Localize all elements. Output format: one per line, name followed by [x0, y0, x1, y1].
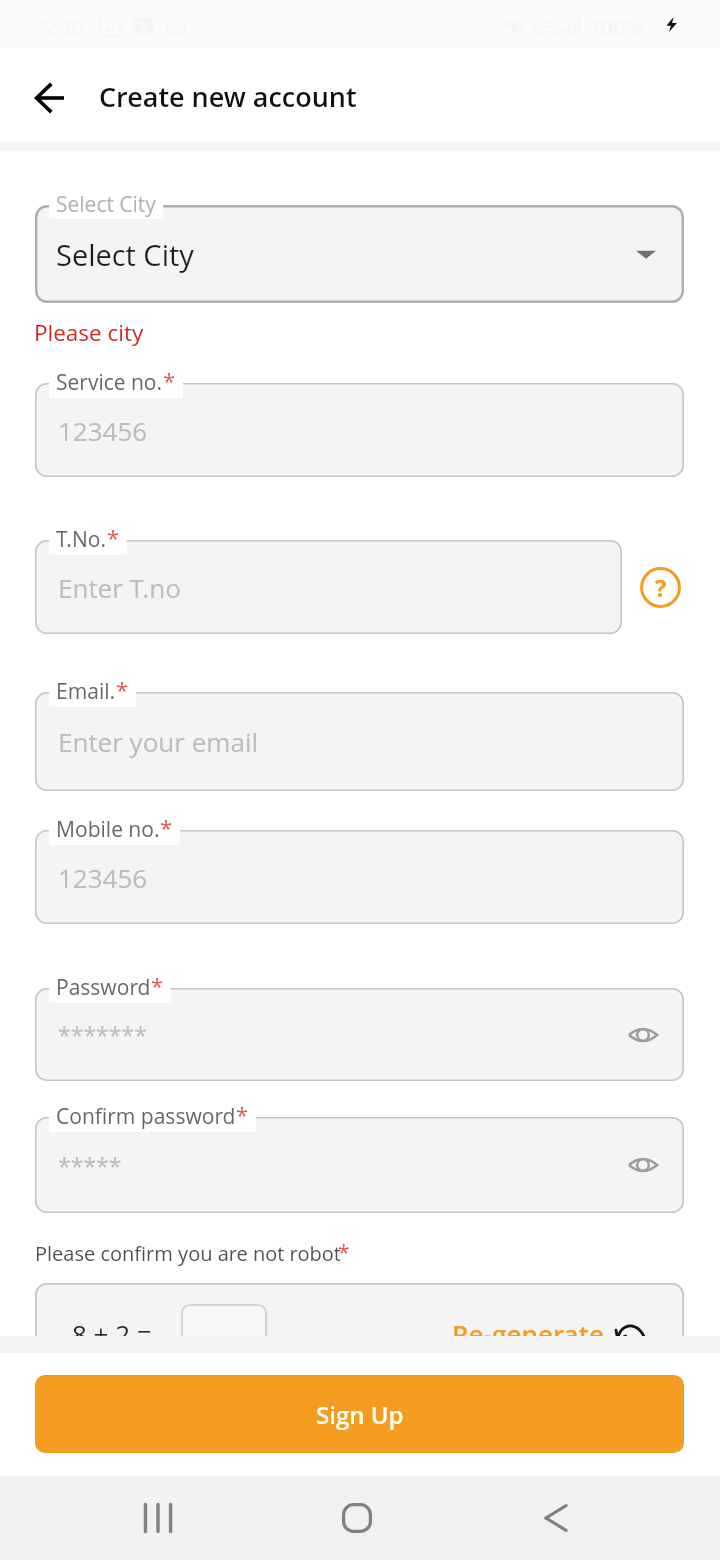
staticText: Please city — [34, 317, 144, 348]
staticText: * — [160, 812, 173, 842]
staticText: 8 + 2 = — [72, 1316, 152, 1351]
staticText: Email. — [56, 677, 116, 706]
staticText: T.No. — [56, 525, 107, 554]
button[interactable] — [35, 830, 684, 924]
button[interactable]: Help — [637, 564, 684, 611]
staticText: * — [107, 522, 120, 552]
staticText: Select City — [56, 235, 194, 274]
button[interactable] — [35, 383, 684, 477]
staticText: Mobile no. — [56, 815, 160, 844]
staticText: * — [151, 970, 164, 1000]
staticText: Enter your email — [58, 724, 259, 759]
staticText: Enter T.no — [58, 570, 181, 605]
staticText: ***** — [58, 1150, 122, 1181]
staticText: Re-generate — [452, 1316, 604, 1351]
staticText: Sign Up — [316, 1398, 404, 1431]
button[interactable]: Back — [516, 1476, 596, 1560]
staticText: ******* — [58, 1019, 147, 1050]
staticText: Select City — [56, 190, 156, 219]
staticText: Create new account — [99, 78, 357, 115]
staticText: Confirm password — [56, 1102, 236, 1131]
button[interactable]: Toggle password visibility — [620, 1142, 666, 1188]
button[interactable] — [35, 540, 622, 634]
button[interactable] — [35, 692, 684, 791]
staticText: * — [116, 674, 129, 704]
staticText: 123456 — [58, 413, 148, 448]
staticText: * — [236, 1099, 249, 1129]
button[interactable] — [181, 1304, 267, 1362]
staticText: * — [163, 365, 176, 395]
button[interactable]: Sign Up — [35, 1375, 684, 1453]
button[interactable]: Back — [20, 68, 78, 126]
staticText: ? — [655, 571, 667, 604]
button[interactable]: Home — [317, 1476, 397, 1560]
button[interactable] — [35, 988, 684, 1081]
staticText: * — [338, 1238, 350, 1267]
button[interactable]: Toggle password visibility — [620, 1012, 666, 1058]
button[interactable]: Recent apps — [118, 1476, 198, 1560]
button[interactable]: Re-generate — [452, 1316, 648, 1351]
staticText: Please confirm you are not robot — [35, 1240, 341, 1267]
staticText: 123456 — [58, 860, 148, 895]
button[interactable] — [35, 1117, 684, 1213]
staticText: Service no. — [56, 368, 163, 397]
staticText: Password — [56, 973, 151, 1002]
button[interactable] — [35, 205, 684, 303]
